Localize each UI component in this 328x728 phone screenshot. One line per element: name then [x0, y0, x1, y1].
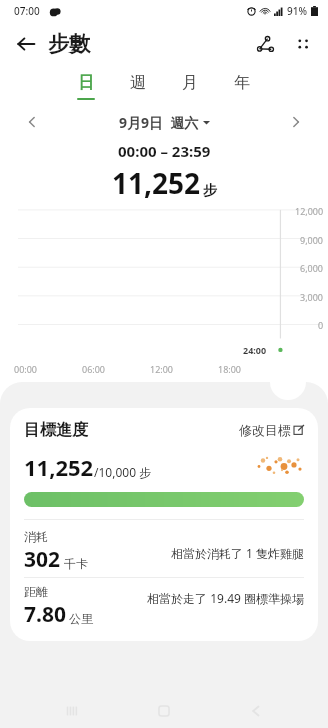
button[interactable]: 9月9日 週六 — [119, 113, 210, 132]
staticText: 公里 — [69, 611, 93, 626]
staticText: 步 — [203, 182, 217, 200]
staticText: 00:00 – 23:59 — [118, 141, 211, 161]
staticText: 0 — [318, 319, 324, 331]
button[interactable]: 年 — [221, 73, 263, 100]
staticText: 11,252 — [112, 164, 201, 202]
staticText: 24:00 — [243, 344, 267, 356]
button[interactable]: Add — [270, 364, 306, 400]
staticText: 18:00 — [218, 363, 242, 375]
staticText: 目標進度 — [24, 420, 88, 440]
button[interactable]: 週 — [117, 73, 159, 100]
staticText: 步數 — [48, 31, 90, 57]
staticText: 9,000 — [300, 234, 324, 246]
staticText: 3,000 — [300, 291, 324, 303]
button[interactable]: Previous day — [18, 108, 46, 136]
button[interactable]: 距離 — [24, 584, 304, 629]
button[interactable]: 消耗 — [24, 529, 304, 574]
button[interactable]: Share — [246, 25, 284, 63]
staticText: 相當於消耗了 1 隻炸雞腿 — [144, 545, 304, 561]
button[interactable]: Back — [8, 26, 44, 62]
button[interactable]: 日 — [65, 73, 107, 100]
button[interactable]: 月 — [169, 73, 211, 100]
staticText: 12:00 — [150, 363, 174, 375]
staticText: 修改目標 — [239, 422, 291, 438]
staticText: 週 — [130, 73, 146, 93]
staticText: 日 — [78, 73, 94, 93]
staticText: 06:00 — [82, 363, 106, 375]
staticText: 302 — [24, 545, 61, 574]
staticText: 年 — [234, 73, 250, 93]
staticText: /10,000 步 — [94, 464, 152, 480]
staticText: 91% — [287, 4, 307, 18]
staticText: 9月9日 週六 — [119, 113, 199, 132]
staticText: 相當於走了 19.49 圈標準操場 — [144, 590, 304, 606]
staticText: 12,000 — [295, 205, 324, 217]
staticText: 07:00 — [14, 4, 40, 18]
button[interactable]: Next day — [282, 108, 310, 136]
button[interactable]: 目標進度 — [10, 408, 318, 641]
staticText: 消耗 — [24, 529, 48, 544]
staticText: 6,000 — [300, 262, 324, 274]
staticText: 千卡 — [64, 556, 88, 571]
button[interactable]: More options — [284, 25, 322, 63]
staticText: 月 — [182, 73, 198, 93]
staticText: 7.80 — [24, 600, 66, 629]
staticText: 00:00 — [14, 363, 38, 375]
button[interactable]: 修改目標 — [239, 422, 304, 438]
staticText: 11,252 — [24, 452, 94, 482]
staticText: 距離 — [24, 584, 48, 599]
